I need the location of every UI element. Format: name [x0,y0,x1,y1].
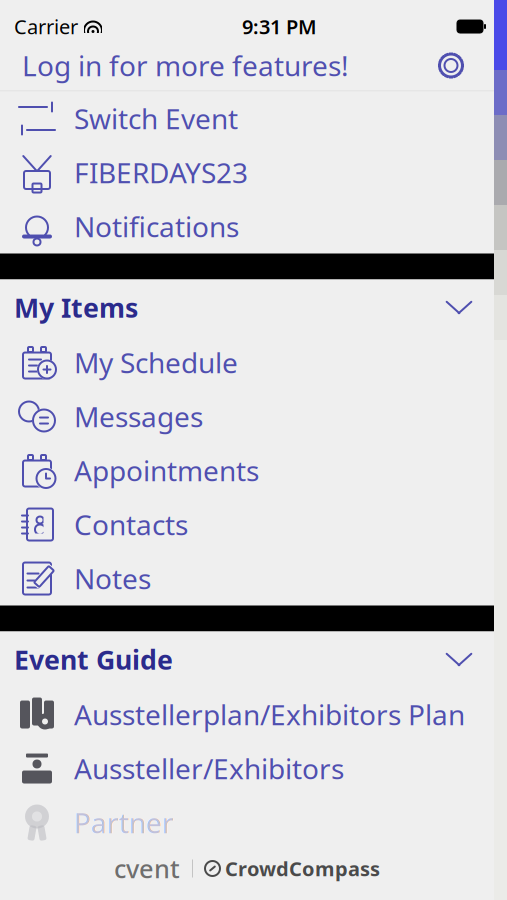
button[interactable]: Contacts [0,497,494,551]
staticText: Appointments [74,452,259,489]
button[interactable]: FIBERDAYS23 [0,145,494,199]
staticText: Carrier [14,13,78,40]
button[interactable]: Notifications [0,199,494,253]
staticText: My Items [14,290,138,325]
staticText: Event Guide [14,642,173,677]
button[interactable]: Event Guide [0,631,494,687]
staticText: Partner [74,804,174,841]
button[interactable]: Settings [436,42,494,88]
staticText: Contacts [74,506,188,543]
staticText: Messages [74,398,203,435]
button[interactable]: Appointments [0,443,494,497]
button[interactable]: Ausstellerplan/Exhibitors Plan [0,687,494,741]
staticText: FIBERDAYS23 [74,154,248,191]
staticText: CrowdCompass [225,855,380,882]
button[interactable]: Notes [0,551,494,605]
staticText: My Schedule [74,344,238,381]
staticText: 9:31 PM [242,13,317,40]
button[interactable]: My Schedule [0,335,494,389]
button[interactable]: Messages [0,389,494,443]
staticText: cvent [114,852,180,885]
button[interactable]: Switch Event [0,91,494,145]
button[interactable]: Log in for more features! [0,37,349,94]
button[interactable]: My Items [0,279,494,335]
staticText: Notifications [74,208,239,245]
staticText: Ausstellerplan/Exhibitors Plan [74,696,465,733]
staticText: Notes [74,560,151,597]
staticText: Aussteller/Exhibitors [74,750,344,787]
button[interactable]: Partner [0,795,494,849]
staticText: Switch Event [74,100,238,137]
staticText: Log in for more features! [22,47,349,84]
button[interactable]: Aussteller/Exhibitors [0,741,494,795]
